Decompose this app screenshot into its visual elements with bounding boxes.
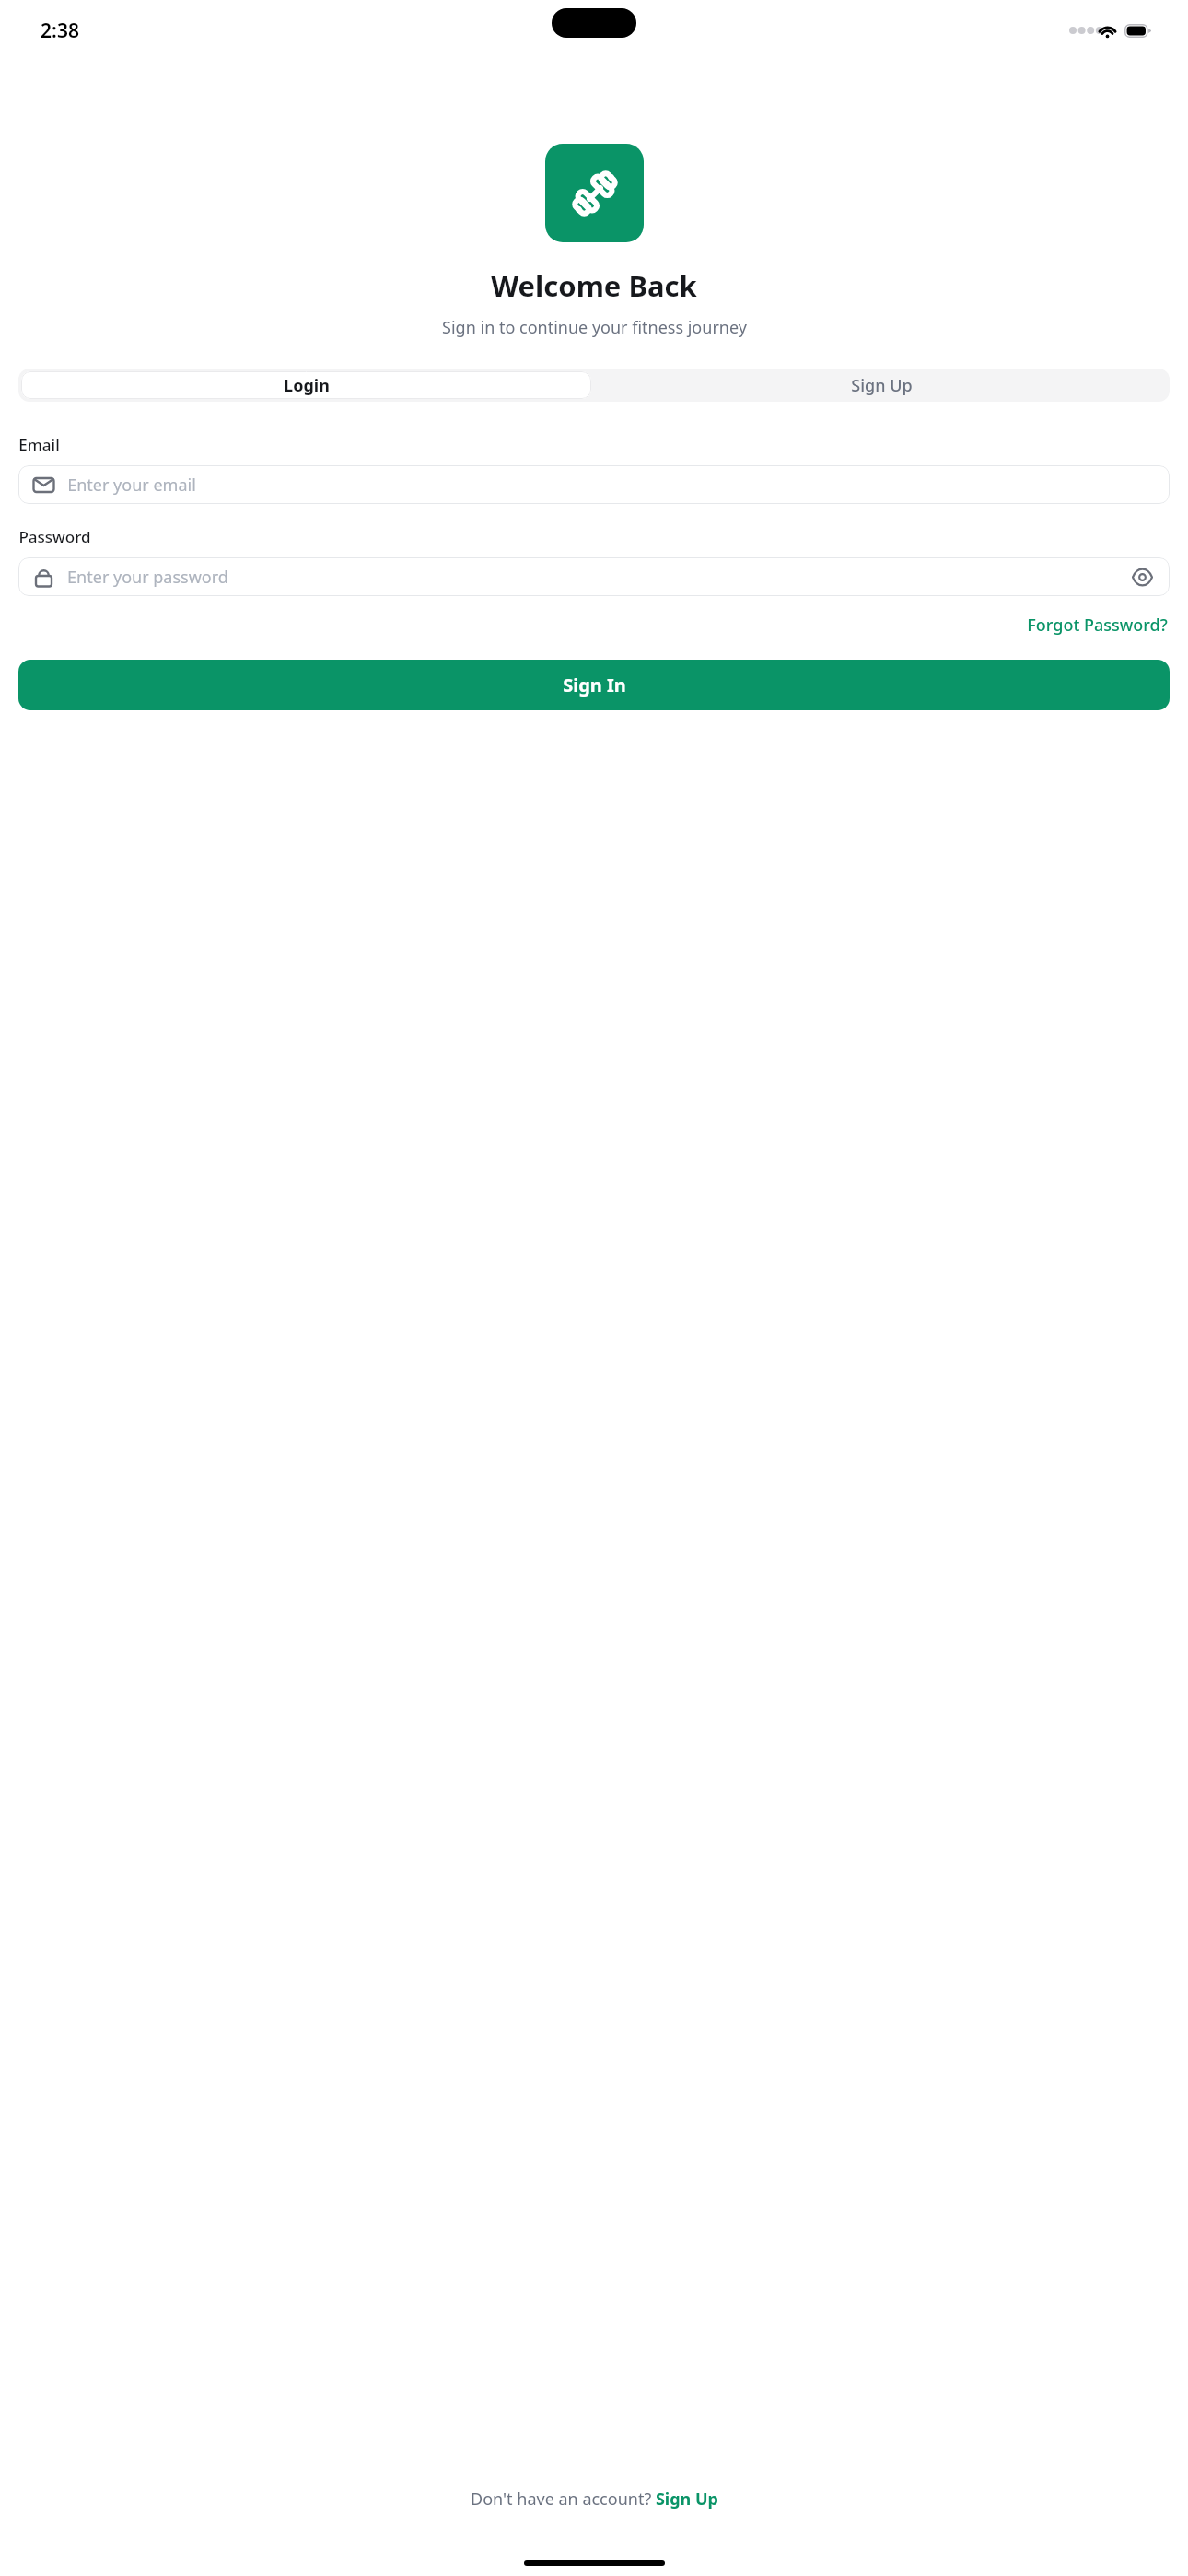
button[interactable]: Enter your email xyxy=(18,465,1170,504)
staticText: Sign In xyxy=(563,673,626,697)
staticText: Enter your email xyxy=(67,474,196,497)
button[interactable]: Forgot Password? xyxy=(1025,610,1170,640)
staticText: Don't have an account? Sign Up xyxy=(471,2488,718,2511)
staticText: Sign in to continue your fitness journey xyxy=(442,316,747,339)
staticText: Email xyxy=(18,434,60,455)
button[interactable]: Login xyxy=(21,371,591,399)
staticText: Password xyxy=(18,526,91,547)
staticText: Login xyxy=(284,374,330,397)
staticText: Sign Up xyxy=(851,374,913,397)
button[interactable]: Sign Up xyxy=(594,369,1170,402)
staticText: Enter your password xyxy=(67,566,228,589)
button[interactable]: Enter your password xyxy=(18,557,1170,596)
button[interactable]: Don't have an account? Sign Up xyxy=(0,2488,1188,2511)
staticText: Forgot Password? xyxy=(1027,614,1168,637)
staticText: Welcome Back xyxy=(491,266,697,305)
button[interactable]: Sign In xyxy=(18,660,1170,710)
staticText: 2:38 xyxy=(41,18,79,44)
button[interactable]: Show password xyxy=(1128,563,1156,591)
